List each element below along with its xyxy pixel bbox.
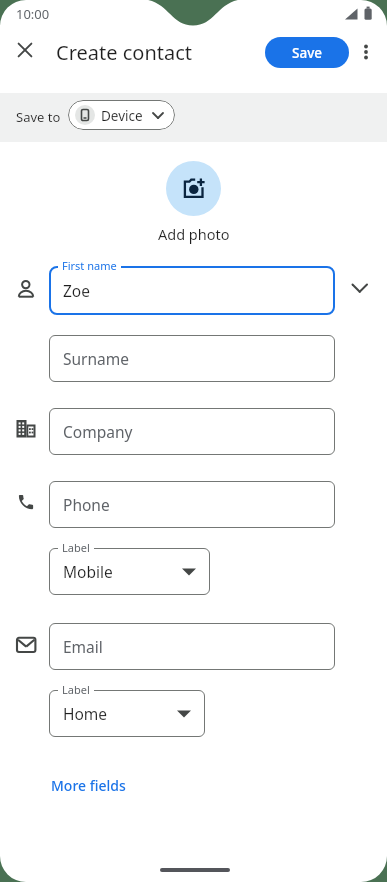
staticText: Label (62, 540, 90, 555)
staticText: Home (63, 703, 108, 724)
button[interactable]: Email (49, 623, 335, 670)
staticText: Surname (63, 348, 129, 369)
staticText: Email (63, 636, 103, 657)
button[interactable]: Mobile (49, 548, 210, 595)
staticText: Create contact (56, 39, 193, 66)
staticText: Company (63, 421, 133, 442)
button[interactable]: Zoe (49, 266, 335, 315)
staticText: Mobile (63, 561, 113, 582)
button[interactable] (12, 37, 38, 63)
button[interactable] (356, 42, 376, 62)
button[interactable]: Phone (49, 481, 335, 528)
staticText: Phone (63, 494, 110, 515)
button[interactable] (166, 161, 221, 216)
staticText: Zoe (63, 280, 90, 301)
staticText: Save to (16, 108, 61, 126)
button[interactable]: Company (49, 408, 335, 455)
button[interactable]: Device (68, 100, 175, 130)
button[interactable]: Surname (49, 335, 335, 382)
staticText: Save (292, 44, 323, 62)
staticText: Label (62, 682, 90, 697)
staticText: Add photo (158, 224, 230, 244)
staticText: Device (101, 107, 143, 125)
button[interactable]: Home (49, 690, 205, 737)
staticText: 10:00 (16, 5, 50, 23)
button[interactable]: More fields (40, 768, 136, 802)
staticText: More fields (51, 776, 126, 795)
button[interactable]: Save (265, 37, 349, 68)
staticText: First name (62, 258, 117, 273)
